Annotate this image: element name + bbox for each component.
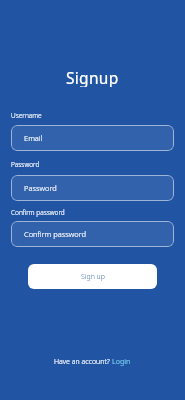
staticText: Password <box>11 160 40 169</box>
button[interactable]: Confirm password <box>11 221 174 247</box>
staticText: Login <box>112 357 131 367</box>
staticText: Password <box>24 183 57 193</box>
button[interactable]: Sign up <box>28 264 157 289</box>
staticText: Confirm password <box>24 229 86 239</box>
staticText: Sign up <box>81 272 105 282</box>
staticText: Confirm password <box>11 208 65 217</box>
staticText: Have an account? <box>54 357 112 367</box>
button[interactable]: Password <box>11 175 174 201</box>
button[interactable]: Login <box>112 357 131 367</box>
button[interactable]: Email <box>11 125 174 151</box>
staticText: Username <box>11 111 42 120</box>
staticText: Signup <box>66 67 119 87</box>
staticText: Email <box>24 133 43 143</box>
